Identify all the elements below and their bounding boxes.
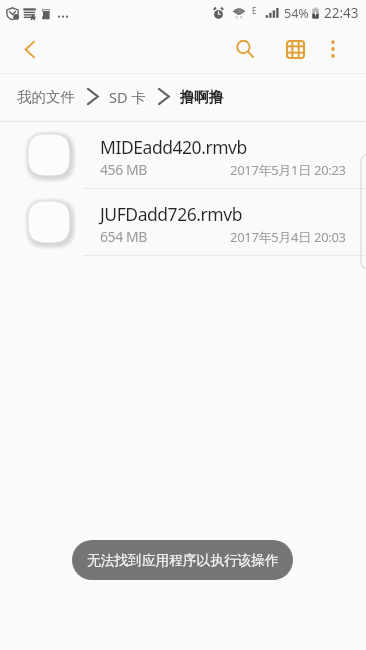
button[interactable]: JUFDadd726.rmvb — [0, 189, 366, 255]
staticText: 撸啊撸 — [180, 88, 224, 106]
button[interactable]: MIDEadd420.rmvb — [0, 122, 366, 188]
button[interactable]: SD 卡 — [109, 87, 146, 107]
staticText: 22:43 — [324, 4, 359, 22]
staticText: MIDEadd420.rmvb — [100, 135, 247, 159]
staticText: 我的文件 — [17, 88, 75, 106]
button[interactable]: Grid view — [273, 27, 317, 71]
button[interactable]: 我的文件 — [17, 88, 75, 106]
button[interactable]: Back — [8, 27, 52, 71]
staticText: SD 卡 — [109, 87, 146, 107]
staticText: 456 MB — [100, 160, 148, 179]
staticText: E — [252, 5, 257, 16]
staticText: 654 MB — [100, 227, 148, 246]
staticText: JUFDadd726.rmvb — [100, 202, 242, 226]
staticText: 2017年5月1日 20:23 — [230, 161, 346, 179]
staticText: 2017年5月4日 20:03 — [230, 228, 346, 246]
staticText: 无法找到应用程序以执行该操作 — [87, 552, 279, 569]
button[interactable]: Search — [223, 27, 267, 71]
button[interactable]: More options — [313, 29, 353, 69]
button[interactable]: 撸啊撸 — [180, 88, 224, 106]
staticText: 54% — [284, 5, 309, 22]
